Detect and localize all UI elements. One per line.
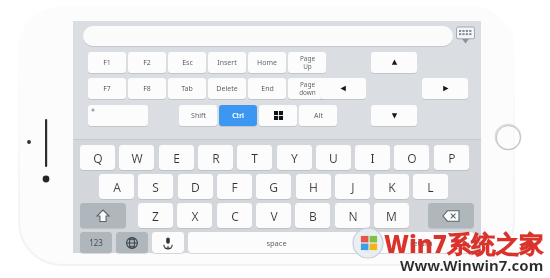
button[interactable]: W xyxy=(119,145,154,170)
staticText: Alt xyxy=(314,111,323,121)
button[interactable]: End xyxy=(248,78,286,99)
button[interactable]: J xyxy=(335,174,370,199)
staticText: R xyxy=(212,150,220,166)
button[interactable]: Esc xyxy=(168,52,206,73)
button[interactable]: Shift xyxy=(179,105,217,126)
button[interactable]: Q xyxy=(80,145,115,170)
staticText: down xyxy=(299,88,316,97)
staticText: F1 xyxy=(103,58,111,68)
button[interactable]: V xyxy=(256,203,291,228)
button[interactable]: D xyxy=(178,174,213,199)
staticText: Esc xyxy=(182,58,193,68)
staticText: Page xyxy=(300,80,315,89)
staticText: Insert xyxy=(217,58,237,68)
button[interactable]: T xyxy=(237,145,272,170)
button[interactable]: space xyxy=(188,232,365,253)
button[interactable] xyxy=(83,26,453,46)
staticText: 123 xyxy=(89,237,103,248)
button[interactable]: P xyxy=(434,145,469,170)
staticText: Win7系统之家 xyxy=(384,227,543,260)
button[interactable]: Tab xyxy=(168,78,206,99)
staticText: return xyxy=(410,238,433,248)
button[interactable]: Page xyxy=(288,78,326,99)
button[interactable]: L xyxy=(413,174,448,199)
button[interactable]: U xyxy=(316,145,351,170)
button[interactable]: C xyxy=(217,203,252,228)
button[interactable]: A xyxy=(99,174,134,199)
staticText: Q xyxy=(93,150,103,166)
button[interactable]: Home xyxy=(248,52,286,73)
staticText: Home xyxy=(257,58,277,68)
button[interactable]: Arrow right xyxy=(422,78,468,99)
button[interactable]: H xyxy=(296,174,331,199)
staticText: H xyxy=(309,179,318,195)
button[interactable]: B xyxy=(295,203,330,228)
button[interactable]: Insert xyxy=(208,52,246,73)
button[interactable]: Page xyxy=(288,52,326,73)
staticText: F7 xyxy=(103,84,111,94)
button[interactable]: O xyxy=(394,145,429,170)
staticText: X xyxy=(191,208,199,224)
staticText: P xyxy=(448,150,456,166)
staticText: Tab xyxy=(181,84,193,94)
button[interactable]: G xyxy=(256,174,291,199)
button[interactable]: Backspace xyxy=(428,203,474,228)
button[interactable]: Hide keyboard xyxy=(455,26,476,45)
staticText: E xyxy=(173,150,180,166)
staticText: space xyxy=(266,238,287,248)
staticText: Ctrl xyxy=(232,111,244,121)
staticText: M xyxy=(386,208,397,224)
staticText: V xyxy=(270,208,278,224)
button[interactable]: M xyxy=(374,203,409,228)
button[interactable]: return xyxy=(369,232,474,253)
staticText: K xyxy=(388,179,396,195)
button[interactable]: Windows xyxy=(259,105,297,126)
button[interactable]: F xyxy=(217,174,252,199)
button[interactable]: Alt xyxy=(299,105,337,126)
button[interactable]: Ctrl xyxy=(219,105,257,126)
button[interactable]: K xyxy=(374,174,409,199)
button[interactable]: Z xyxy=(138,203,173,228)
staticText: Delete xyxy=(216,84,238,94)
button[interactable]: Arrow up xyxy=(371,52,417,73)
staticText: Www.Winwin7.com xyxy=(400,255,544,275)
button[interactable]: Delete xyxy=(208,78,246,99)
button[interactable]: Arrow down xyxy=(371,105,417,126)
button[interactable]: I xyxy=(355,145,390,170)
staticText: Z xyxy=(152,208,159,224)
button[interactable]: F1 xyxy=(88,52,126,73)
button[interactable]: N xyxy=(335,203,370,228)
staticText: A xyxy=(113,179,121,195)
button[interactable]: F2 xyxy=(128,52,166,73)
button[interactable]: 123 xyxy=(80,232,112,253)
staticText: N xyxy=(348,208,358,224)
button[interactable]: Y xyxy=(277,145,312,170)
button[interactable]: X xyxy=(177,203,212,228)
button[interactable]: E xyxy=(159,145,194,170)
staticText: G xyxy=(269,179,278,195)
staticText: Page xyxy=(300,54,315,63)
button[interactable]: Touchpad xyxy=(88,105,148,126)
staticText: Y xyxy=(291,150,298,166)
staticText: O xyxy=(407,150,417,166)
staticText: F2 xyxy=(143,58,151,68)
button[interactable]: S xyxy=(138,174,173,199)
staticText: F8 xyxy=(143,84,151,94)
staticText: End xyxy=(261,84,274,94)
button[interactable]: Shift xyxy=(80,203,126,228)
staticText: J xyxy=(351,179,355,195)
button[interactable]: Dictate xyxy=(152,232,184,253)
staticText: B xyxy=(309,208,317,224)
staticText: U xyxy=(329,150,338,166)
button[interactable]: Change keyboard xyxy=(116,232,148,253)
staticText: S xyxy=(152,179,159,195)
button[interactable]: R xyxy=(198,145,233,170)
staticText: D xyxy=(191,179,200,195)
staticText: F xyxy=(231,179,238,195)
staticText: Shift xyxy=(191,111,206,121)
staticText: L xyxy=(427,179,434,195)
staticText: I xyxy=(370,150,375,166)
button[interactable]: Arrow left xyxy=(320,78,366,99)
button[interactable]: F8 xyxy=(128,78,166,99)
button[interactable]: F7 xyxy=(88,78,126,99)
